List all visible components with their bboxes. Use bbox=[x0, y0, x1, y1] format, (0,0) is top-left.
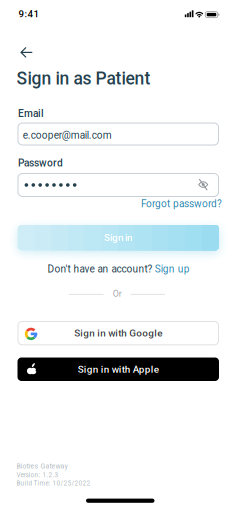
staticText: Biotres Gateway bbox=[16, 462, 67, 470]
button[interactable]: Sign in with Apple bbox=[17, 357, 219, 381]
button[interactable]: Back bbox=[16, 42, 37, 63]
staticText: Sign in bbox=[104, 232, 132, 243]
staticText: e.cooper@mail.com bbox=[23, 129, 112, 141]
staticText: Forgot password? bbox=[141, 198, 222, 210]
staticText: Or bbox=[113, 289, 122, 299]
button[interactable]: Show password bbox=[195, 177, 213, 194]
staticText: Sign in as Patient bbox=[16, 68, 150, 89]
button[interactable]: Sign in with Google bbox=[17, 321, 219, 345]
button[interactable]: Sign in bbox=[17, 225, 219, 250]
staticText: Sign up bbox=[155, 263, 190, 275]
button[interactable]: Forgot password? bbox=[141, 198, 222, 210]
staticText: Email bbox=[18, 107, 44, 119]
staticText: Password bbox=[18, 157, 63, 169]
staticText: Build Time: 10/25/2022 bbox=[16, 479, 90, 487]
staticText: Version: 1.2.3 bbox=[16, 471, 58, 479]
staticText: Don't have an account? bbox=[47, 263, 152, 275]
staticText: Sign in with Google bbox=[74, 327, 162, 339]
staticText: 9:41 bbox=[18, 8, 39, 20]
staticText: Sign in with Apple bbox=[78, 363, 159, 375]
button[interactable]: Sign up bbox=[155, 263, 190, 275]
